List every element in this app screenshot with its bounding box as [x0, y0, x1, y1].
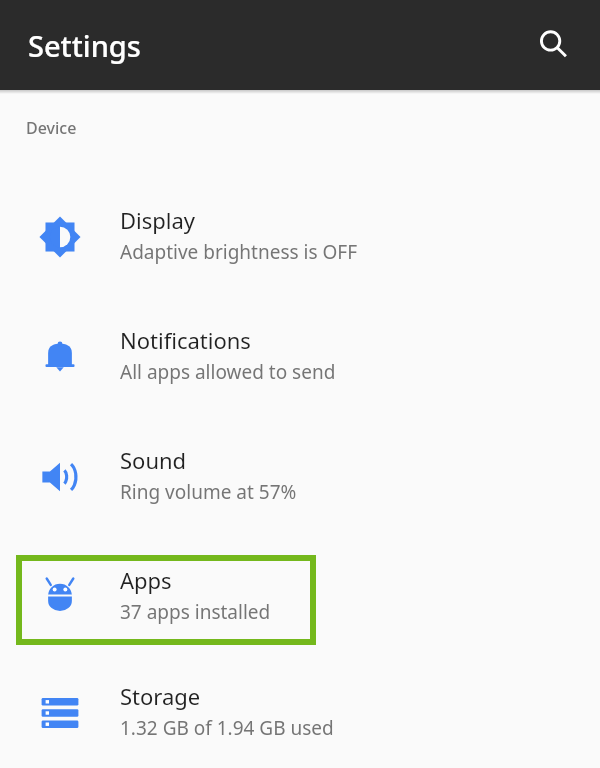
button[interactable]: Notifications — [0, 297, 600, 417]
button[interactable]: Sound — [0, 417, 600, 537]
button[interactable]: Display — [0, 177, 600, 297]
staticText: 37 apps installed — [120, 599, 271, 625]
staticText: Notifications — [120, 325, 251, 355]
button[interactable]: Apps — [0, 537, 600, 657]
staticText: Storage — [120, 681, 201, 711]
staticText: Display — [120, 205, 196, 235]
staticText: Sound — [120, 445, 187, 475]
staticText: All apps allowed to send — [120, 359, 336, 385]
staticText: Adaptive brightness is OFF — [120, 239, 358, 265]
staticText: Ring volume at 57% — [120, 479, 297, 505]
staticText: Device — [26, 117, 77, 139]
button[interactable]: Storage — [0, 657, 600, 768]
staticText: 1.32 GB of 1.94 GB used — [120, 715, 334, 741]
button[interactable]: Search — [526, 17, 582, 73]
staticText: Apps — [120, 565, 172, 595]
staticText: Settings — [28, 26, 141, 65]
